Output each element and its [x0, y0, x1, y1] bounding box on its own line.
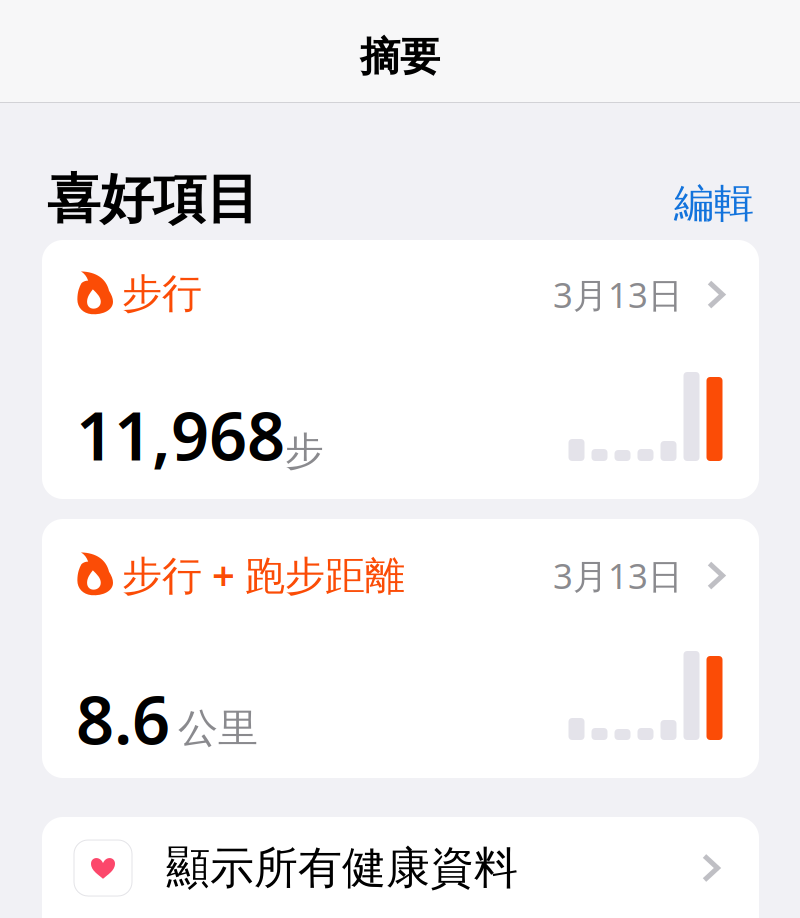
staticText: 公里 [178, 704, 258, 753]
staticText: 3月13日 [553, 271, 683, 317]
staticText: 步 [285, 427, 324, 475]
button[interactable]: 步行 + 跑步距離 [42, 519, 759, 778]
staticText: 11,968 [76, 390, 285, 479]
staticText: 步行 [122, 269, 202, 318]
button[interactable]: 顯示所有健康資料 [42, 817, 759, 918]
staticText: 摘要 [360, 32, 440, 81]
staticText: 喜好項目 [47, 166, 259, 232]
button[interactable]: 步行 [42, 240, 759, 499]
staticText: 編輯 [674, 179, 754, 228]
staticText: 8.6 [76, 674, 170, 763]
staticText: 3月13日 [553, 552, 683, 598]
staticText: 顯示所有健康資料 [166, 841, 518, 895]
button[interactable]: 編輯 [674, 183, 754, 232]
staticText: 步行 + 跑步距離 [122, 548, 405, 601]
